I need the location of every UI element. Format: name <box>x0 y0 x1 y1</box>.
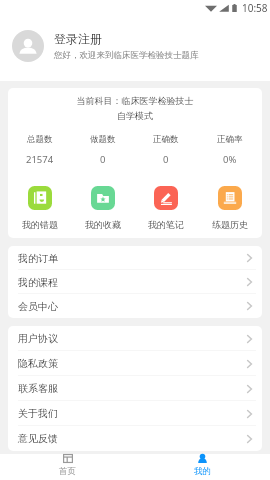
staticText: 我的 <box>194 466 211 477</box>
button[interactable]: 联系客服 <box>8 376 262 401</box>
staticText: 21574 <box>26 153 54 166</box>
staticText: 登录注册 <box>54 31 102 46</box>
staticText: 0 <box>163 153 169 166</box>
button[interactable]: 练题历史 <box>198 186 262 230</box>
staticText: 10:58 <box>242 1 268 15</box>
button[interactable]: 我的笔记 <box>134 186 198 230</box>
button[interactable]: 隐私政策 <box>8 351 262 376</box>
button[interactable]: 我的订单 <box>8 246 262 270</box>
button[interactable]: 会员中心 <box>8 294 262 318</box>
staticText: 关于我们 <box>18 407 58 420</box>
staticText: 练题历史 <box>212 219 248 230</box>
button[interactable]: 意见反馈 <box>8 426 262 451</box>
staticText: 我的收藏 <box>85 219 121 230</box>
staticText: 隐私政策 <box>18 357 58 370</box>
button[interactable]: 用户协议 <box>8 326 262 351</box>
staticText: 用户协议 <box>18 332 58 345</box>
staticText: 意见反馈 <box>18 432 58 445</box>
staticText: 正确数 <box>153 134 179 145</box>
button[interactable]: 我的错题 <box>8 186 71 230</box>
staticText: 我的错题 <box>22 219 58 230</box>
staticText: 自学模式 <box>8 110 262 121</box>
staticText: 我的笔记 <box>148 219 184 230</box>
staticText: 我的订单 <box>18 252 58 265</box>
staticText: 0% <box>223 153 237 166</box>
staticText: 正确率 <box>217 134 243 145</box>
staticText: 首页 <box>59 466 76 477</box>
staticText: 当前科目：临床医学检验技士 <box>8 95 262 106</box>
button[interactable]: 关于我们 <box>8 401 262 426</box>
staticText: 您好，欢迎来到临床医学检验技士题库 <box>54 50 199 61</box>
button[interactable]: 首页 <box>0 454 135 480</box>
button[interactable]: 我的 <box>135 454 270 480</box>
staticText: 联系客服 <box>18 382 58 395</box>
staticText: 0 <box>100 153 106 166</box>
staticText: 做题数 <box>90 134 116 145</box>
button[interactable]: 我的收藏 <box>71 186 134 230</box>
staticText: 总题数 <box>27 134 53 145</box>
button[interactable]: 我的课程 <box>8 270 262 294</box>
staticText: 我的课程 <box>18 276 58 289</box>
staticText: 会员中心 <box>18 300 58 313</box>
